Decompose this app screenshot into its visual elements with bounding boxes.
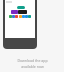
button[interactable]: [9, 15, 12, 18]
button[interactable]: [15, 15, 18, 18]
button[interactable]: [22, 15, 25, 18]
button[interactable]: [25, 15, 28, 18]
button[interactable]: [19, 15, 22, 18]
button[interactable]: [28, 15, 31, 18]
staticText: Download the app: [17, 58, 48, 63]
staticText: available now: [21, 64, 44, 69]
button[interactable]: [11, 10, 18, 14]
button[interactable]: [12, 15, 15, 18]
button[interactable]: [18, 10, 27, 14]
button[interactable]: [17, 6, 25, 9]
